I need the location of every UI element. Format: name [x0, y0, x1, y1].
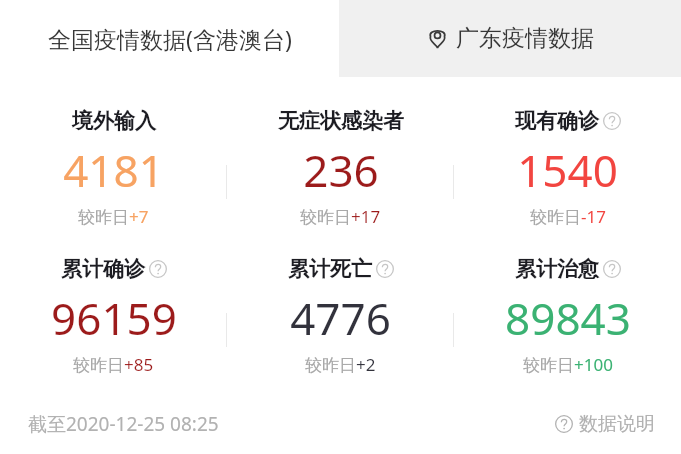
- staticText: 较昨日+100: [523, 353, 613, 376]
- staticText: 数据说明: [579, 412, 655, 436]
- staticText: 96159: [51, 288, 177, 348]
- button[interactable]: 数据说明: [555, 412, 655, 436]
- staticText: 现有确诊: [515, 108, 599, 134]
- other: 累计确诊说明: [149, 260, 167, 278]
- other: 累计死亡说明: [376, 260, 394, 278]
- button[interactable]: 广东疫情数据: [339, 0, 681, 77]
- staticText: 236: [303, 140, 379, 200]
- button[interactable]: 累计确诊: [0, 256, 227, 376]
- staticText: 全国疫情数据(含港澳台): [48, 23, 292, 54]
- staticText: 较昨日+17: [300, 205, 381, 228]
- staticText: 89843: [505, 288, 631, 348]
- staticText: 广东疫情数据: [456, 24, 594, 53]
- button[interactable]: 现有确诊: [454, 108, 681, 228]
- button[interactable]: 累计死亡: [227, 256, 454, 376]
- staticText: 截至2020-12-25 08:25: [28, 411, 219, 437]
- staticText: 较昨日+2: [305, 353, 376, 376]
- staticText: 累计治愈: [515, 256, 599, 282]
- staticText: 较昨日-17: [530, 205, 606, 228]
- other: 现有确诊说明: [603, 112, 621, 130]
- staticText: 累计确诊: [61, 256, 145, 282]
- button[interactable]: 境外输入: [0, 108, 227, 228]
- button[interactable]: 累计治愈: [454, 256, 681, 376]
- button[interactable]: 无症状感染者: [227, 108, 454, 228]
- staticText: 累计死亡: [288, 256, 372, 282]
- staticText: 较昨日+85: [73, 353, 154, 376]
- staticText: 4776: [290, 288, 391, 348]
- staticText: 境外输入: [72, 108, 156, 134]
- staticText: 无症状感染者: [278, 108, 404, 134]
- staticText: 4181: [63, 140, 164, 200]
- staticText: 1540: [517, 140, 618, 200]
- button[interactable]: 全国疫情数据(含港澳台): [0, 0, 339, 77]
- staticText: 较昨日+7: [78, 205, 149, 228]
- other: 累计治愈说明: [603, 260, 621, 278]
